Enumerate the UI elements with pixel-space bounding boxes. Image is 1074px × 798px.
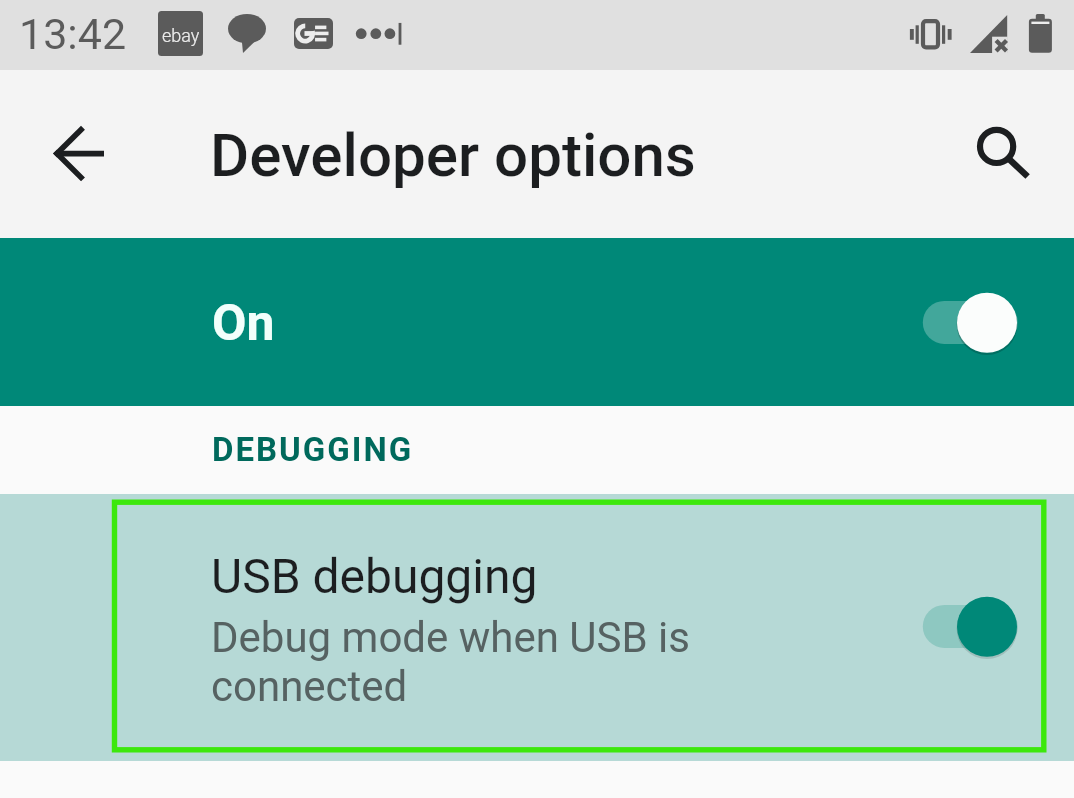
staticText: DEBUGGING [212, 430, 414, 469]
button[interactable]: On [0, 238, 1074, 406]
button[interactable]: Search [960, 110, 1036, 186]
button[interactable]: Back [36, 114, 116, 194]
button[interactable]: USB debugging on [918, 596, 1024, 658]
button[interactable]: USB debugging [0, 494, 1074, 761]
staticText: ebay [162, 25, 200, 46]
staticText: On [212, 294, 275, 353]
staticText: Developer options [210, 120, 696, 190]
staticText: USB debugging [211, 548, 538, 604]
staticText: 13:42 [19, 9, 127, 59]
staticText: Debug mode when USB is connected [211, 613, 690, 711]
button[interactable]: Developer options on [918, 292, 1024, 354]
